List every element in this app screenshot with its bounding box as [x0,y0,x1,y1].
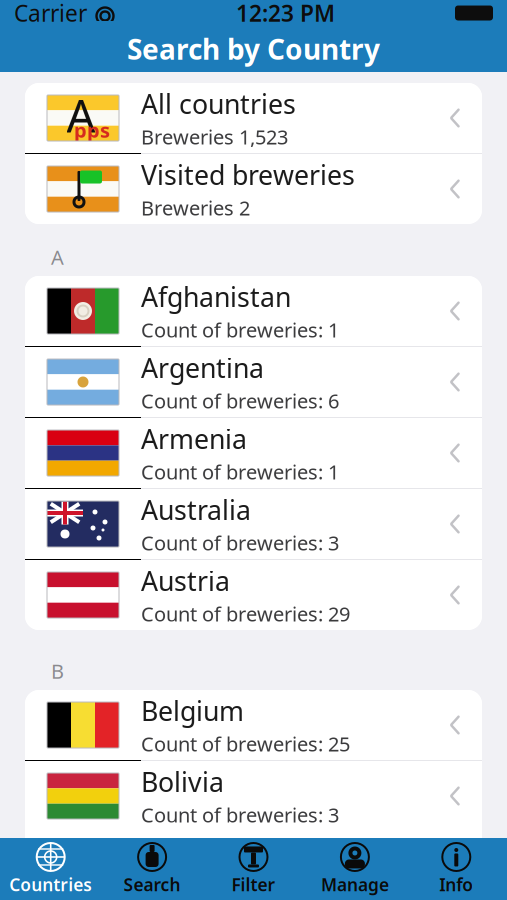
staticText: Brazil [141,834,210,869]
staticText: Armenia [141,421,247,456]
staticText: B [51,658,64,684]
button[interactable]: Info [406,838,507,900]
button[interactable]: Filter [203,838,304,900]
button[interactable]: Brazil [25,831,482,900]
staticText: Countries [9,873,92,896]
button[interactable]: Visited breweries [25,154,482,224]
button[interactable]: Countries [0,838,101,900]
staticText: Count of breweries: 25 [141,730,350,757]
staticText: Count of breweries: 6 [141,387,339,414]
button[interactable]: A [25,83,482,154]
staticText: Search [124,873,181,896]
staticText: A [51,244,64,270]
staticText: Carrier [14,0,87,28]
staticText: Belgium [141,693,244,728]
button[interactable]: Afghanistan [25,276,482,347]
staticText: Search by Country [127,30,380,68]
staticText: Count of breweries: 1 [141,458,339,485]
staticText: Manage [321,873,389,896]
button[interactable]: Manage [304,838,406,900]
staticText: Count of breweries: 1 [141,316,339,343]
staticText: Count of breweries: 3 [141,801,339,828]
button[interactable]: Argentina [25,347,482,418]
staticText: Count of breweries: 3 [141,529,339,556]
button[interactable]: Search [101,838,203,900]
button[interactable]: Belgium [25,690,482,761]
button[interactable]: Austria [25,560,482,630]
button[interactable]: Australia [25,489,482,560]
staticText: Austria [141,563,230,598]
staticText: pps [74,117,110,143]
staticText: Visited breweries [141,157,355,192]
button[interactable]: Armenia [25,418,482,489]
staticText: Argentina [141,350,264,385]
staticText: 12:23 PM [236,0,335,28]
staticText: All countries [141,86,296,121]
button[interactable]: Bolivia [25,761,482,831]
staticText: Count of breweries: 29 [141,600,350,627]
staticText: Breweries 1,523 [141,123,288,150]
staticText: Breweries 2 [141,194,250,221]
staticText: Australia [141,492,251,527]
staticText: Afghanistan [141,279,291,314]
staticText: Bolivia [141,764,224,799]
staticText: Count of breweries: 12 [141,871,350,898]
staticText: Info [439,873,473,896]
staticText: Filter [231,873,275,896]
staticText: A [66,85,95,145]
